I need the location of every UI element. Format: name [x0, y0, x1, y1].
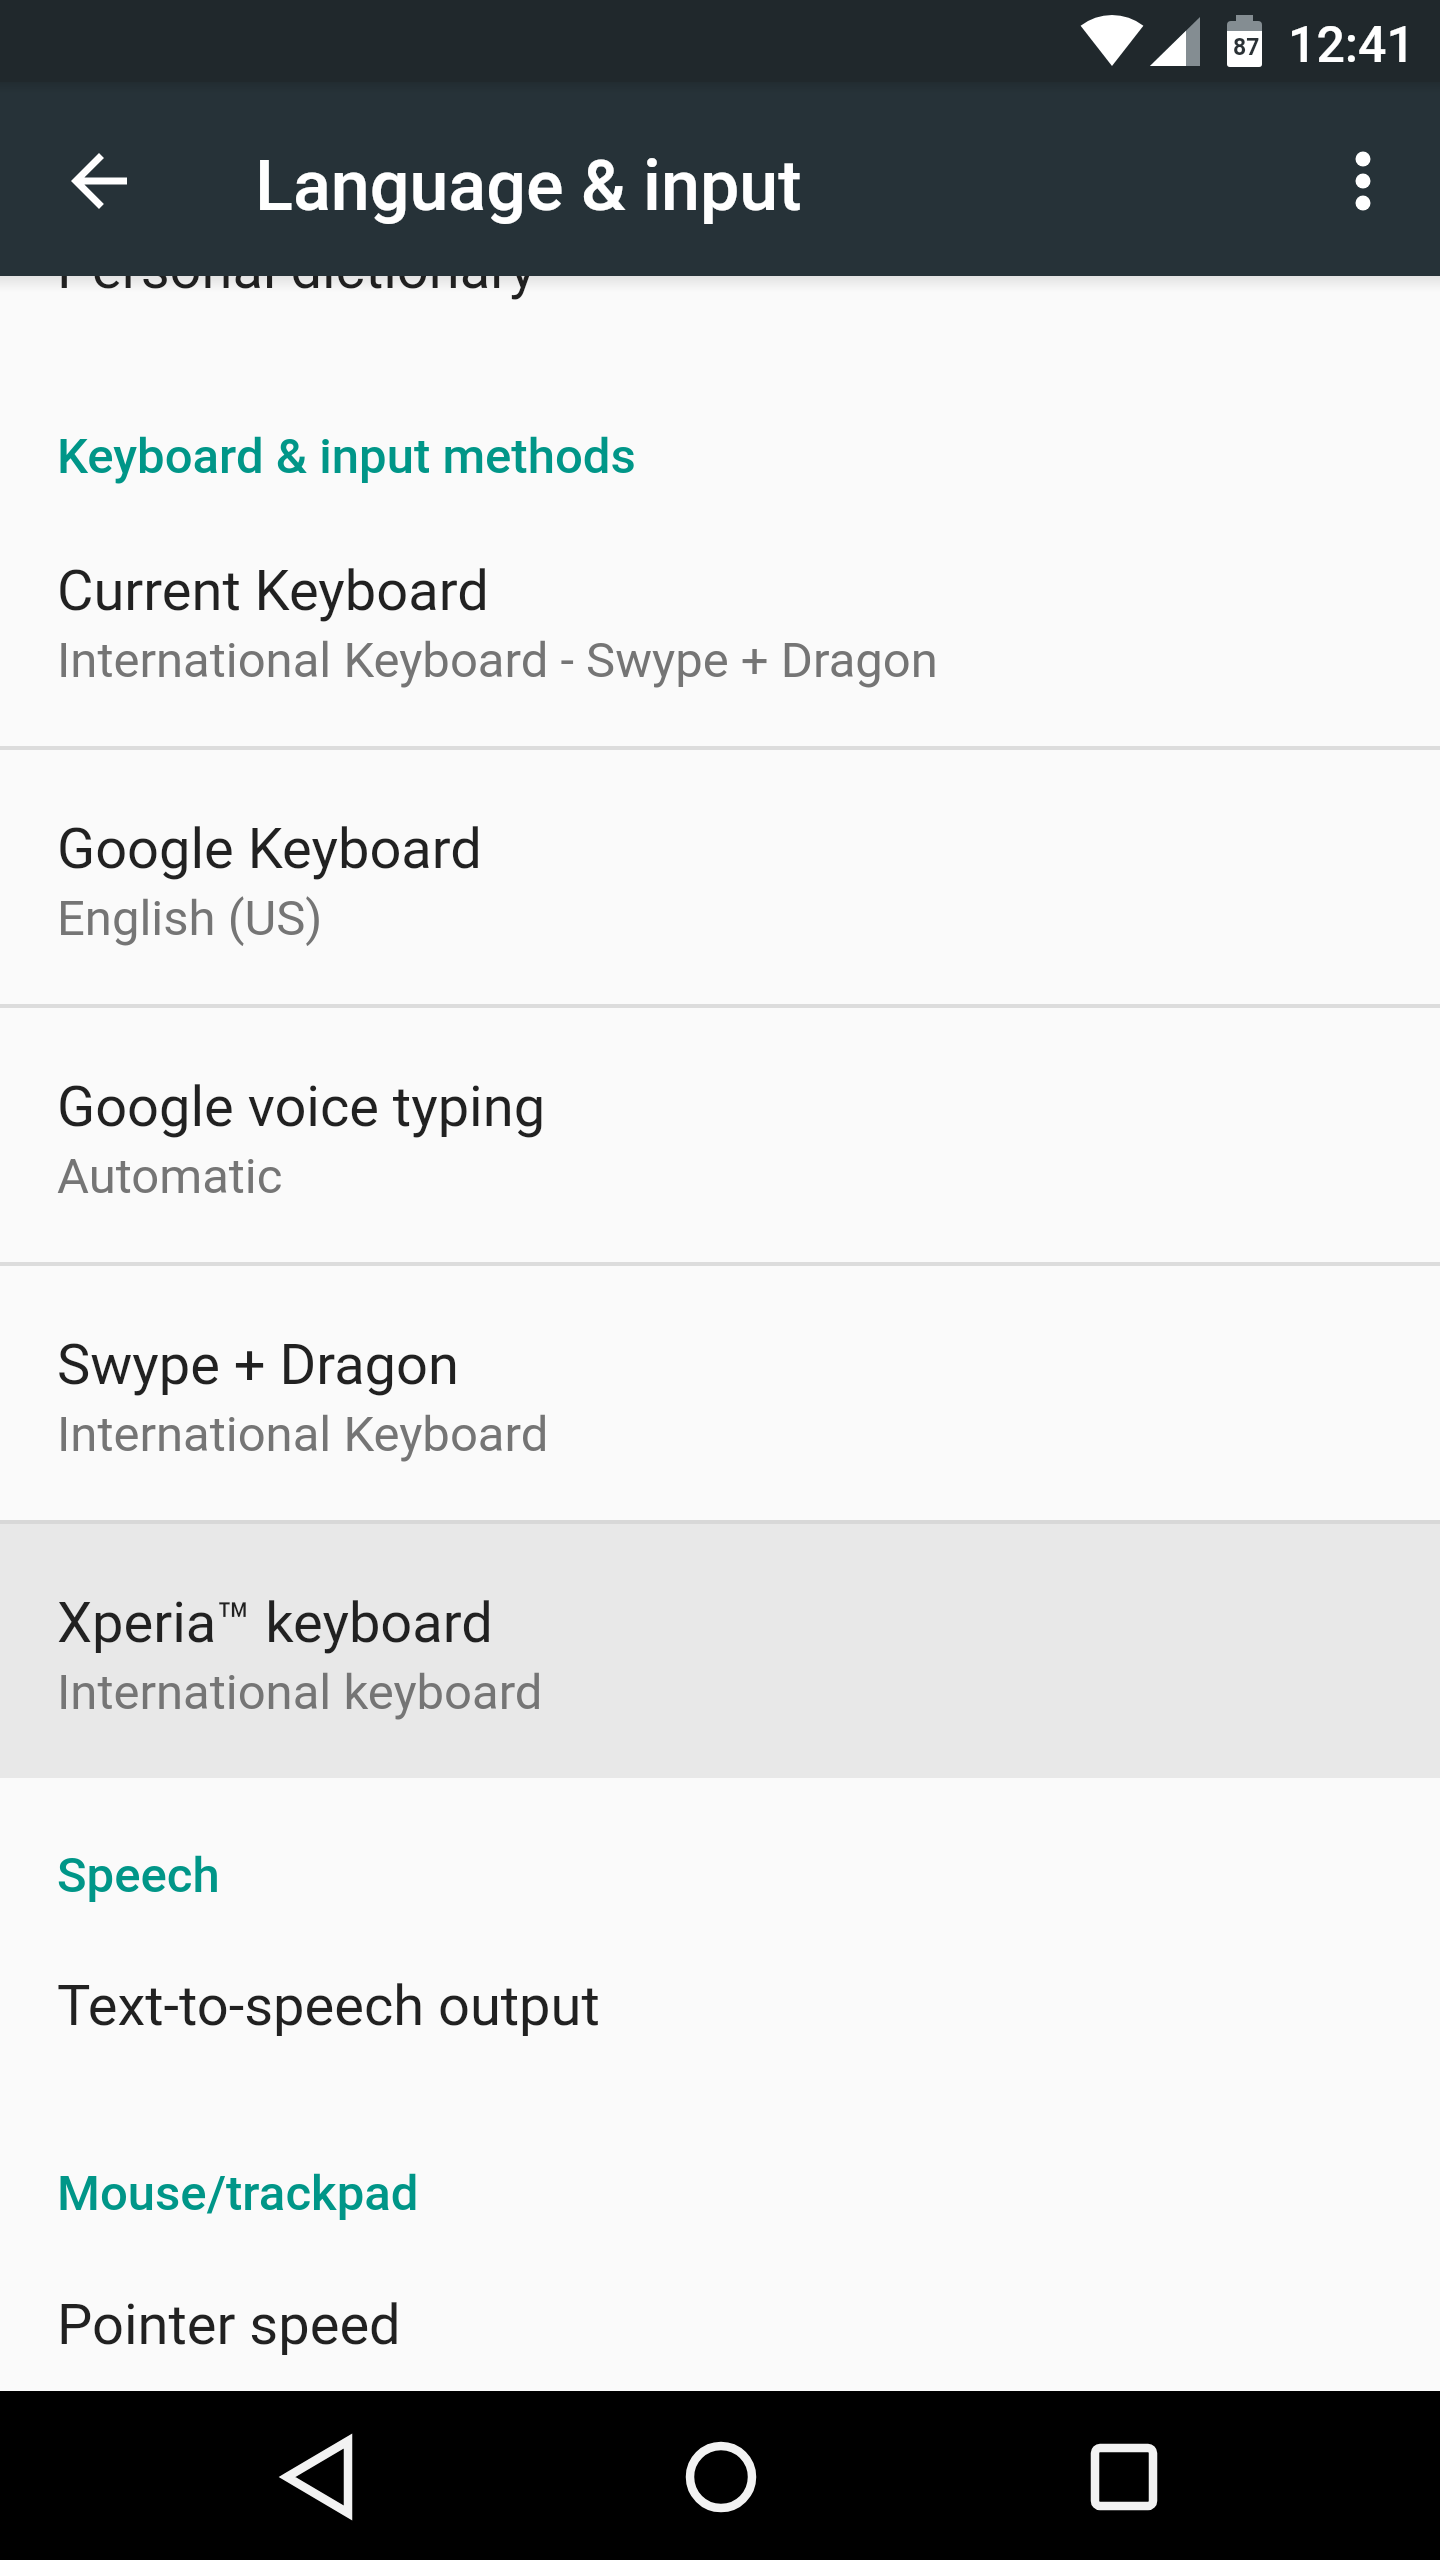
staticText: Xperia™ keyboard — [57, 1590, 493, 1656]
staticText: Google voice typing — [57, 1074, 546, 1140]
staticText: Text-to-speech output — [57, 1973, 600, 2039]
staticText: Speech — [57, 1847, 220, 1904]
staticText: 12:41 — [1288, 16, 1415, 75]
staticText: Automatic — [57, 1148, 283, 1205]
staticText: Pointer speed — [57, 2292, 401, 2358]
staticText: Current Keyboard — [57, 558, 489, 624]
staticText: Personal dictionary — [57, 236, 537, 302]
staticText: 87 — [1233, 34, 1260, 61]
staticText: International Keyboard - Swype + Dragon — [57, 632, 938, 689]
staticText: Language & input — [255, 145, 802, 227]
staticText: Mouse/trackpad — [57, 2165, 419, 2222]
staticText: Google Keyboard — [57, 816, 482, 882]
staticText: Swype + Dragon — [57, 1332, 459, 1398]
staticText: English (US) — [57, 890, 323, 947]
staticText: Keyboard & input methods — [57, 428, 636, 485]
staticText: International keyboard — [57, 1664, 543, 1721]
staticText: International Keyboard — [57, 1406, 549, 1463]
